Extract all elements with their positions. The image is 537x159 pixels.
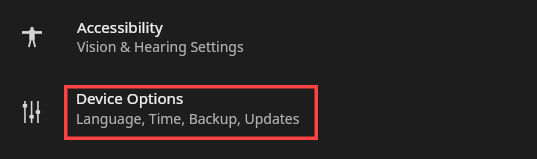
staticText: Vision & Hearing Settings xyxy=(77,37,244,56)
staticText: Accessibility xyxy=(77,17,163,38)
button[interactable]: Device Options xyxy=(0,75,537,141)
button[interactable]: Accessibility xyxy=(0,4,537,68)
staticText: Language, Time, Backup, Updates xyxy=(76,109,300,128)
other: Device Options xyxy=(22,101,40,123)
other: Accessibility xyxy=(22,27,42,47)
staticText: Device Options xyxy=(76,88,184,109)
